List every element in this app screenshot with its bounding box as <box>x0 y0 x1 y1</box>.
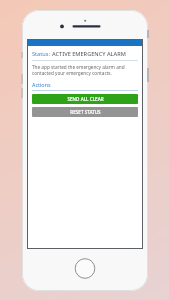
staticText: Actions <box>32 81 51 88</box>
staticText: SEND ALL CLEAR <box>67 96 104 102</box>
staticText: RESET STATUS <box>70 109 101 115</box>
button[interactable]: SEND ALL CLEAR <box>32 94 138 104</box>
button[interactable]: RESET STATUS <box>32 107 138 117</box>
staticText: ACTIVE EMERGENCY ALARM <box>52 50 126 58</box>
staticText: The app started the emergency alarm and … <box>32 64 138 76</box>
staticText: Status: <box>32 50 52 58</box>
